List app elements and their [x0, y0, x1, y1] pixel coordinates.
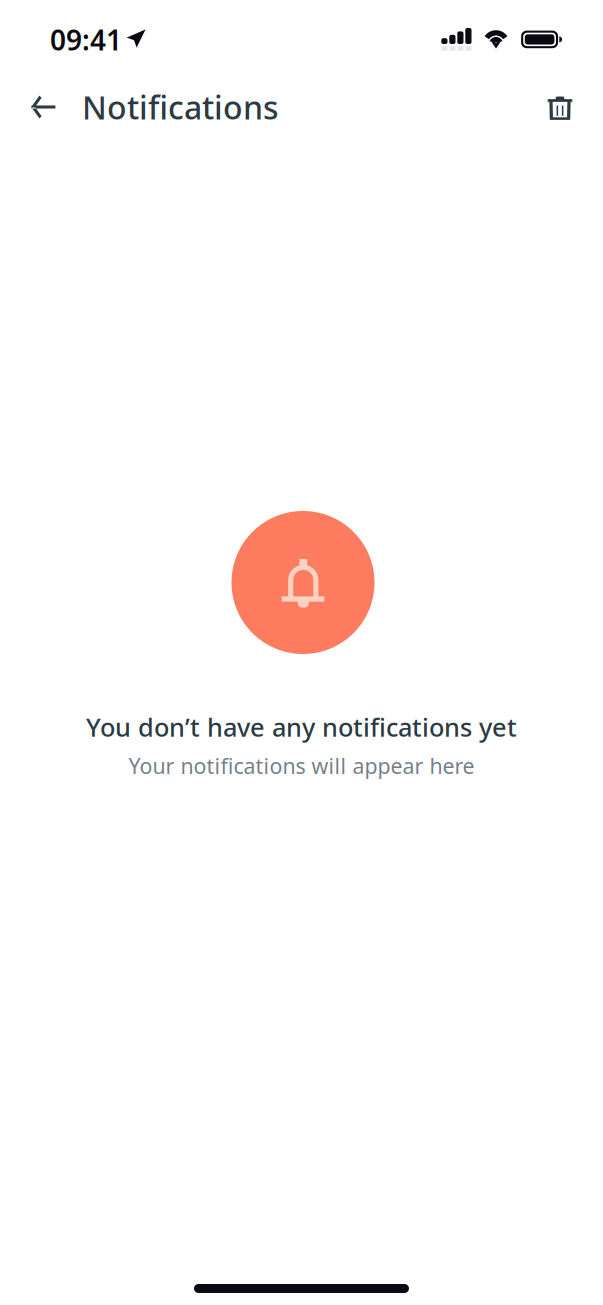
staticText: Notifications: [82, 86, 279, 128]
staticText: 09:41: [50, 21, 122, 58]
button[interactable]: Notifications: [64, 85, 279, 129]
button[interactable]: Back: [22, 85, 64, 129]
staticText: Your notifications will appear here: [128, 752, 474, 780]
staticText: You don’t have any notifications yet: [86, 710, 517, 744]
button[interactable]: Delete all notifications: [539, 85, 581, 129]
